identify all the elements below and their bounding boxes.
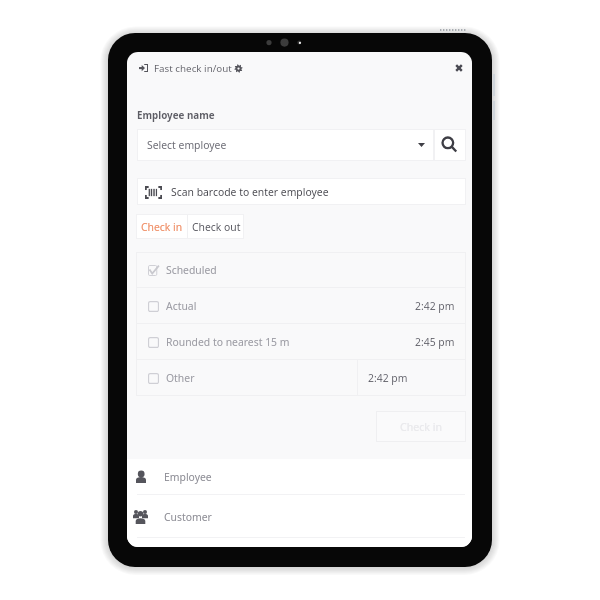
button[interactable]: Other (136, 360, 357, 396)
staticText: Fast check in/out (154, 62, 232, 75)
staticText: Employee (164, 470, 212, 484)
button[interactable]: Search (434, 129, 466, 161)
staticText: Scan barcode to enter employee (171, 185, 329, 199)
staticText: Check in (400, 420, 442, 434)
staticText: 2:42 pm (415, 299, 455, 313)
button[interactable]: Close (450, 59, 468, 77)
button[interactable]: Check in (136, 214, 187, 239)
button[interactable]: Check in (376, 411, 466, 442)
button[interactable]: Customer (127, 495, 472, 538)
staticText: Scheduled (166, 263, 217, 277)
button[interactable]: Check out (188, 214, 244, 239)
button[interactable]: Scheduled (136, 252, 466, 288)
staticText: Other (166, 371, 195, 385)
staticText: 2:45 pm (415, 335, 455, 349)
staticText: Employee name (137, 109, 215, 122)
staticText: Rounded to nearest 15 m (166, 335, 290, 349)
button[interactable]: 2:42 pm (358, 360, 466, 396)
button[interactable]: Fast check in/out (139, 57, 243, 79)
staticText: Check out (192, 220, 241, 234)
staticText: Check in (141, 220, 183, 234)
staticText: Actual (166, 299, 197, 313)
button[interactable]: Scan barcode to enter employee (137, 178, 466, 205)
button[interactable]: Rounded to nearest 15 m (136, 324, 466, 360)
staticText: Select employee (147, 138, 227, 152)
button[interactable]: Actual (136, 288, 466, 324)
button[interactable]: Employee (127, 459, 472, 495)
button[interactable]: Select employee (137, 129, 434, 161)
staticText: 2:42 pm (368, 371, 408, 385)
staticText: Customer (164, 510, 212, 524)
